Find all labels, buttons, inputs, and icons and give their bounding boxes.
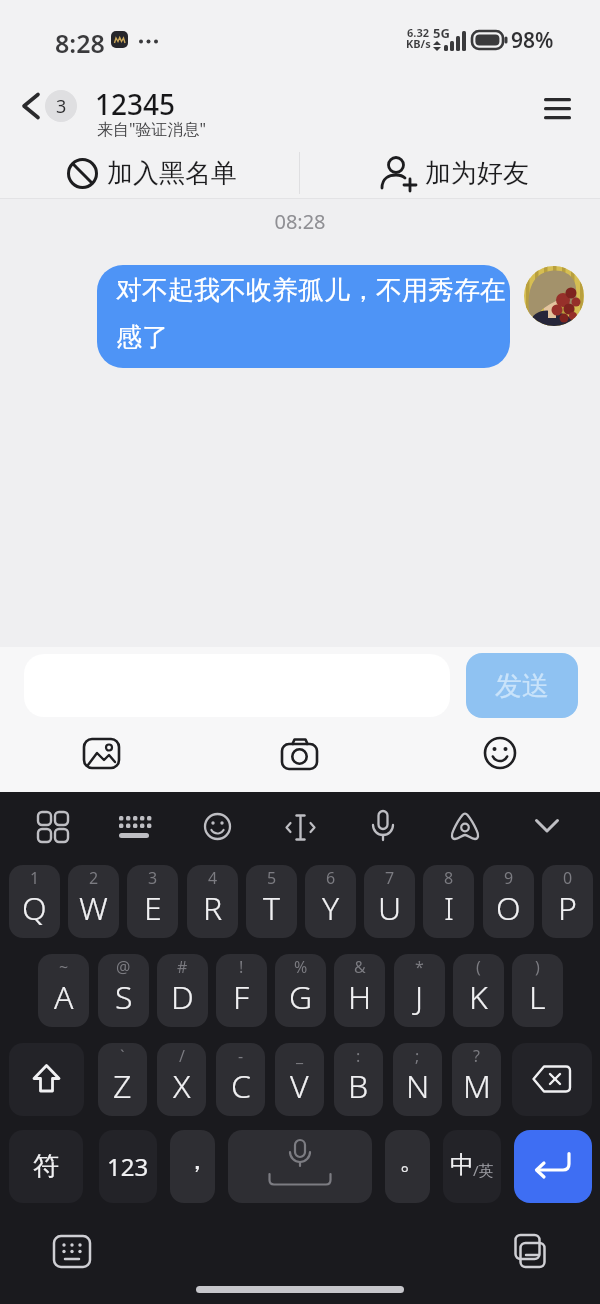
button[interactable] bbox=[276, 803, 324, 851]
button[interactable]: ! bbox=[216, 954, 267, 1027]
button[interactable]: 加为好友 bbox=[301, 148, 600, 198]
button[interactable] bbox=[111, 803, 159, 851]
button[interactable]: 9 bbox=[483, 865, 534, 938]
staticText: C bbox=[231, 1064, 251, 1108]
button[interactable]: ( bbox=[453, 954, 504, 1027]
staticText: 9 bbox=[504, 867, 514, 889]
staticText: I bbox=[444, 886, 454, 930]
button[interactable]: ， bbox=[170, 1130, 215, 1203]
button[interactable]: 对不起我不收养孤儿，不用秀存在 感了 bbox=[97, 265, 510, 368]
staticText: ) bbox=[535, 956, 540, 978]
button[interactable] bbox=[359, 803, 407, 851]
staticText: D bbox=[171, 975, 194, 1019]
staticText: 。 bbox=[399, 1144, 425, 1177]
button[interactable]: 中 bbox=[443, 1130, 501, 1203]
staticText: 4 bbox=[208, 867, 218, 889]
button[interactable] bbox=[78, 733, 126, 775]
staticText: : bbox=[356, 1045, 361, 1067]
staticText: 符 bbox=[33, 1150, 59, 1183]
button[interactable]: 0 bbox=[542, 865, 593, 938]
staticText: 来自"验证消息" bbox=[97, 118, 207, 140]
button[interactable]: 6 bbox=[305, 865, 356, 938]
button[interactable] bbox=[478, 731, 522, 775]
staticText: K bbox=[469, 975, 488, 1019]
button[interactable]: & bbox=[334, 954, 385, 1027]
button[interactable] bbox=[276, 731, 324, 775]
button[interactable]: 发送 bbox=[466, 653, 578, 718]
staticText: KB/s bbox=[406, 36, 431, 51]
staticText: ~ bbox=[59, 956, 69, 978]
staticText: J bbox=[415, 975, 424, 1019]
staticText: T bbox=[263, 886, 280, 930]
staticText: 8:28 bbox=[55, 26, 105, 60]
button[interactable]: ` bbox=[98, 1043, 147, 1116]
button[interactable] bbox=[46, 1228, 98, 1278]
button[interactable]: 123 bbox=[99, 1130, 157, 1203]
button[interactable] bbox=[228, 1130, 372, 1203]
staticText: L bbox=[529, 975, 546, 1019]
button[interactable]: 4 bbox=[187, 865, 238, 938]
staticText: X bbox=[173, 1064, 191, 1108]
staticText: 对不起我不收养孤儿，不用秀存在 感了 bbox=[116, 274, 506, 354]
button[interactable]: 1 bbox=[9, 865, 60, 938]
button[interactable]: / bbox=[157, 1043, 206, 1116]
staticText: 6.32 bbox=[407, 25, 429, 40]
button[interactable]: 3 bbox=[127, 865, 178, 938]
staticText: & bbox=[354, 956, 366, 978]
button[interactable]: @ bbox=[98, 954, 149, 1027]
button[interactable] bbox=[512, 1043, 592, 1116]
button[interactable]: _ bbox=[275, 1043, 324, 1116]
staticText: /英 bbox=[473, 1160, 494, 1180]
button[interactable]: 。 bbox=[385, 1130, 430, 1203]
button[interactable] bbox=[9, 1043, 84, 1116]
staticText: 1 bbox=[30, 867, 40, 889]
button[interactable]: 符 bbox=[9, 1130, 83, 1203]
button[interactable] bbox=[194, 803, 242, 851]
staticText: O bbox=[496, 886, 521, 930]
button[interactable]: ~ bbox=[38, 954, 89, 1027]
staticText: 12345 bbox=[95, 85, 176, 123]
button[interactable]: 2 bbox=[68, 865, 119, 938]
button[interactable]: # bbox=[157, 954, 208, 1027]
button[interactable] bbox=[28, 803, 76, 851]
button[interactable]: ) bbox=[512, 954, 563, 1027]
button[interactable]: : bbox=[334, 1043, 383, 1116]
staticText: U bbox=[378, 886, 402, 930]
button[interactable]: ? bbox=[452, 1043, 501, 1116]
staticText: ; bbox=[415, 1045, 420, 1067]
staticText: N bbox=[406, 1064, 430, 1108]
staticText: V bbox=[290, 1064, 309, 1108]
button[interactable] bbox=[524, 266, 584, 326]
staticText: 123 bbox=[107, 1150, 149, 1183]
button[interactable]: 7 bbox=[364, 865, 415, 938]
button[interactable]: 3 bbox=[10, 80, 260, 142]
button[interactable] bbox=[528, 90, 588, 130]
button[interactable]: 5 bbox=[246, 865, 297, 938]
staticText: 5 bbox=[267, 867, 277, 889]
staticText: * bbox=[415, 956, 424, 978]
button[interactable]: % bbox=[275, 954, 326, 1027]
staticText: 发送 bbox=[495, 669, 549, 703]
staticText: ( bbox=[476, 956, 481, 978]
staticText: E bbox=[144, 886, 162, 930]
staticText: G bbox=[289, 975, 313, 1019]
staticText: ? bbox=[473, 1045, 480, 1067]
staticText: # bbox=[177, 956, 188, 978]
button[interactable] bbox=[522, 803, 570, 851]
button[interactable]: - bbox=[216, 1043, 265, 1116]
staticText: W bbox=[79, 886, 108, 930]
button[interactable]: 加入黑名单 bbox=[0, 148, 299, 198]
staticText: 3 bbox=[56, 94, 67, 119]
button[interactable] bbox=[502, 1228, 554, 1278]
staticText: 7 bbox=[385, 867, 395, 889]
staticText: 2 bbox=[89, 867, 99, 889]
staticText: P bbox=[558, 886, 577, 930]
button[interactable] bbox=[514, 1130, 592, 1203]
button[interactable]: 8 bbox=[423, 865, 474, 938]
staticText: ` bbox=[120, 1045, 125, 1067]
staticText: H bbox=[348, 975, 372, 1019]
button[interactable]: * bbox=[394, 954, 445, 1027]
button[interactable] bbox=[441, 803, 489, 851]
button[interactable]: ; bbox=[393, 1043, 442, 1116]
